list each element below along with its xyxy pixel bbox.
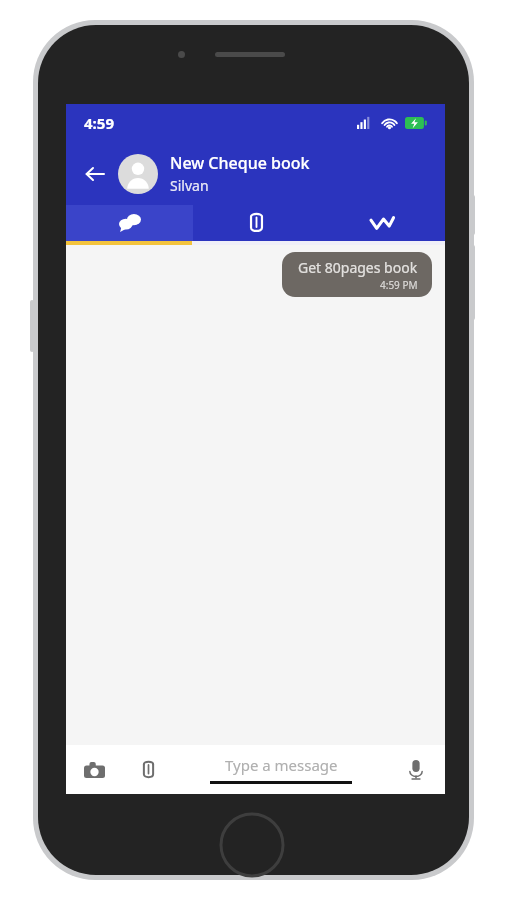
staticText: Silvan — [170, 176, 209, 195]
button[interactable]: Type a message — [164, 745, 397, 794]
button[interactable]: Contact avatar — [118, 154, 158, 194]
button[interactable]: Voice message — [397, 751, 435, 789]
button[interactable]: Attach file — [132, 754, 164, 786]
button[interactable]: Attachments — [193, 205, 319, 241]
button[interactable]: Get 80pages book — [282, 252, 432, 297]
staticText: Type a message — [225, 755, 338, 775]
staticText: 4:59 PM — [380, 278, 418, 292]
button[interactable]: Activity — [319, 205, 445, 241]
staticText: New Cheque book — [170, 152, 310, 174]
staticText: Get 80pages book — [298, 258, 418, 277]
button[interactable]: Chat — [66, 205, 193, 241]
button[interactable]: Back — [78, 157, 112, 191]
staticText: 4:59 — [84, 113, 114, 133]
button[interactable]: Camera — [78, 754, 110, 786]
